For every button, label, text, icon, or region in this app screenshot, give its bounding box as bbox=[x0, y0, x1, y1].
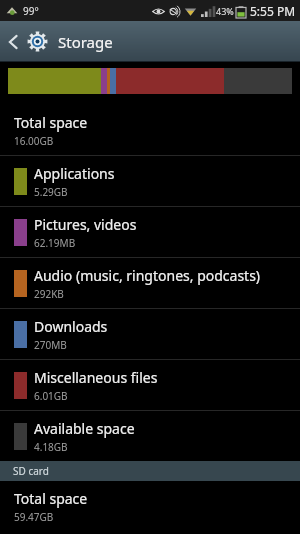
staticText: SD card bbox=[13, 464, 49, 478]
staticText: Total space bbox=[14, 489, 88, 508]
staticText: Total space bbox=[14, 113, 88, 132]
staticText: 292KB bbox=[34, 287, 64, 301]
staticText: Audio (music, ringtones, podcasts) bbox=[34, 266, 261, 285]
staticText: Pictures, videos bbox=[34, 215, 137, 234]
button[interactable]: Applications bbox=[0, 156, 300, 206]
button[interactable]: Audio (music, ringtones, podcasts) bbox=[0, 258, 300, 308]
staticText: Downloads bbox=[34, 317, 108, 336]
staticText: 6.01GB bbox=[34, 389, 68, 403]
button[interactable]: Pictures, videos bbox=[0, 207, 300, 257]
button[interactable]: Total space bbox=[0, 481, 300, 531]
button[interactable]: Downloads bbox=[0, 309, 300, 359]
staticText: 270MB bbox=[34, 338, 67, 352]
staticText: 99° bbox=[23, 4, 39, 18]
staticText: Applications bbox=[34, 164, 115, 183]
staticText: 16.00GB bbox=[14, 134, 54, 148]
other: Back bbox=[7, 33, 20, 51]
button[interactable]: Miscellaneous files bbox=[0, 360, 300, 410]
button[interactable]: Back bbox=[0, 21, 123, 62]
staticText: 4.18GB bbox=[34, 440, 68, 454]
staticText: 43% bbox=[216, 5, 234, 17]
button[interactable]: Available space bbox=[0, 411, 300, 461]
staticText: Miscellaneous files bbox=[34, 368, 158, 387]
button[interactable]: Total space bbox=[0, 105, 300, 155]
staticText: 59.47GB bbox=[14, 510, 54, 524]
staticText: 5.29GB bbox=[34, 185, 68, 199]
staticText: 62.19MB bbox=[34, 236, 76, 250]
staticText: 5:55 PM bbox=[250, 3, 296, 19]
staticText: Available space bbox=[34, 419, 135, 438]
staticText: Storage bbox=[58, 32, 113, 52]
